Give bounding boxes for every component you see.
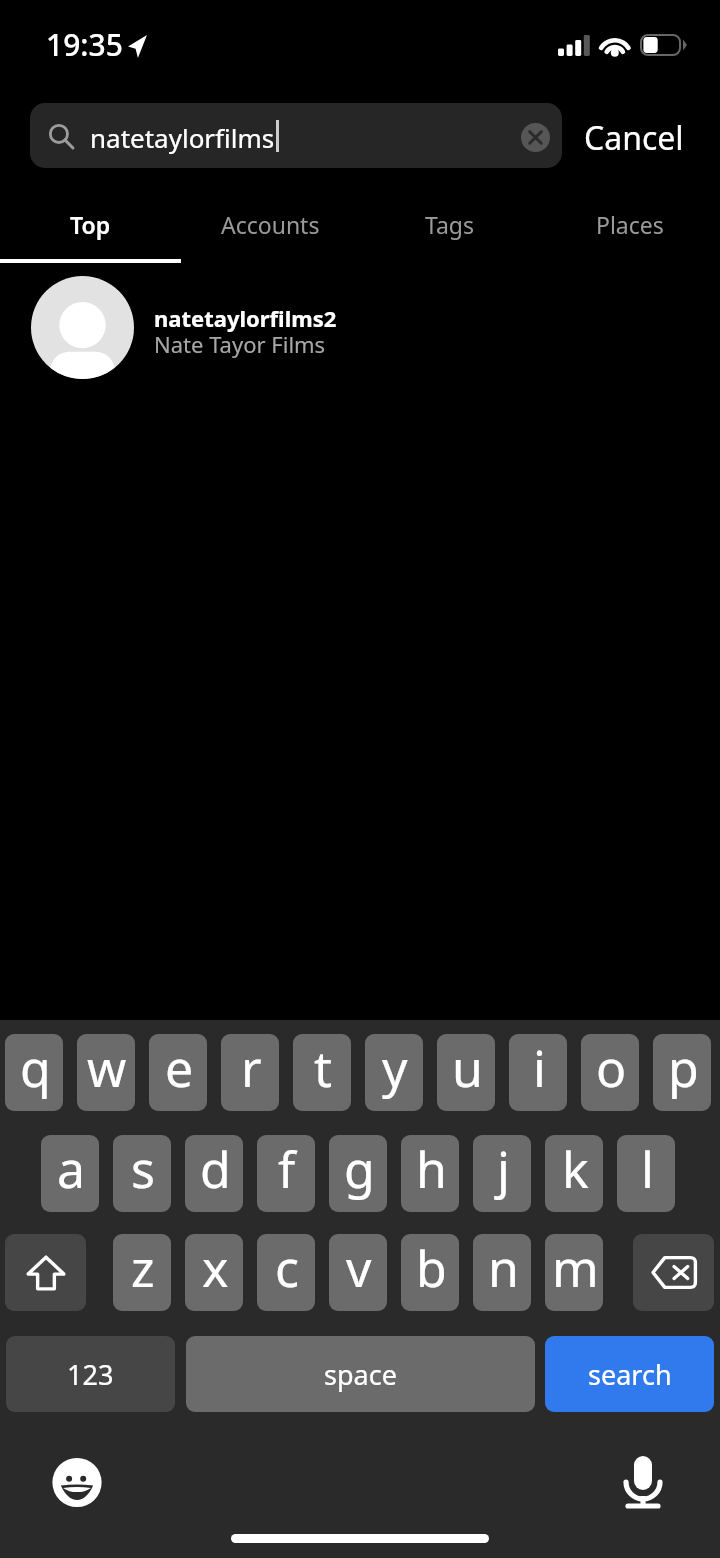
staticText: h [416,1135,447,1203]
button[interactable]: Backspace [633,1234,714,1311]
button[interactable]: 123 [6,1336,175,1412]
button[interactable]: w [77,1034,135,1111]
staticText: 19:35 [46,24,123,65]
staticText: search [588,1356,672,1393]
staticText: i [533,1034,546,1102]
button[interactable]: g [329,1135,387,1212]
staticText: k [562,1135,589,1203]
staticText: f [278,1135,296,1203]
staticText: Top [70,209,111,240]
button[interactable]: y [365,1034,423,1111]
button[interactable]: j [473,1135,531,1212]
staticText: natetaylorfilms [90,120,275,155]
staticText: z [131,1234,155,1302]
staticText: Accounts [221,209,320,240]
staticText: t [314,1034,333,1102]
button[interactable]: Cancel [584,113,700,163]
button[interactable]: t [293,1034,351,1111]
staticText: e [165,1034,194,1102]
button[interactable]: Shift [5,1234,86,1311]
button[interactable]: k [545,1135,603,1212]
button[interactable]: a [41,1135,99,1212]
staticText: d [200,1135,231,1203]
button[interactable]: h [401,1135,459,1212]
staticText: y [382,1034,408,1102]
staticText: p [668,1034,699,1102]
button[interactable]: i [509,1034,567,1111]
button[interactable]: Tags [360,196,540,252]
button[interactable]: search [545,1336,714,1412]
staticText: q [20,1034,51,1102]
staticText: v [346,1234,372,1302]
staticText: x [202,1234,229,1302]
staticText: g [344,1135,375,1203]
button[interactable]: natetaylorfilms [30,103,562,168]
staticText: m [552,1234,599,1302]
button[interactable]: e [149,1034,207,1111]
button[interactable]: c [257,1234,315,1311]
staticText: o [596,1034,627,1102]
button[interactable]: Dictation [606,1440,680,1522]
button[interactable]: Clear search [521,123,550,152]
button[interactable]: v [329,1234,387,1311]
button[interactable]: p [653,1034,711,1111]
staticText: a [57,1135,86,1203]
button[interactable]: Accounts [180,196,360,252]
button[interactable]: r [221,1034,279,1111]
button[interactable]: Top [0,196,180,252]
staticText: l [641,1135,654,1203]
staticText: b [416,1234,447,1302]
staticText: j [497,1135,510,1203]
staticText: space [324,1356,397,1393]
button[interactable]: x [185,1234,243,1311]
staticText: Tags [425,209,475,240]
staticText: natetaylorfilms2 [154,303,337,333]
button[interactable]: m [545,1234,603,1311]
button[interactable]: d [185,1135,243,1212]
staticText: Cancel [584,116,684,160]
staticText: u [452,1034,483,1102]
button[interactable]: q [5,1034,63,1111]
button[interactable]: space [186,1336,535,1412]
button[interactable]: natetaylorfilms2 [0,270,720,385]
button[interactable]: l [617,1135,675,1212]
staticText: s [131,1135,155,1203]
staticText: 123 [67,1356,114,1393]
button[interactable]: s [113,1135,171,1212]
button[interactable]: Places [540,196,720,252]
button[interactable]: n [473,1234,531,1311]
button[interactable]: f [257,1135,315,1212]
button[interactable]: z [113,1234,171,1311]
staticText: c [275,1234,299,1302]
button[interactable]: u [437,1034,495,1111]
button[interactable]: Emoji keyboard [38,1444,116,1522]
staticText: Places [596,209,664,240]
staticText: w [87,1034,127,1102]
staticText: n [488,1234,519,1302]
staticText: Nate Tayor Films [154,329,326,359]
button[interactable]: o [581,1034,639,1111]
button[interactable]: b [401,1234,459,1311]
staticText: r [241,1034,262,1102]
